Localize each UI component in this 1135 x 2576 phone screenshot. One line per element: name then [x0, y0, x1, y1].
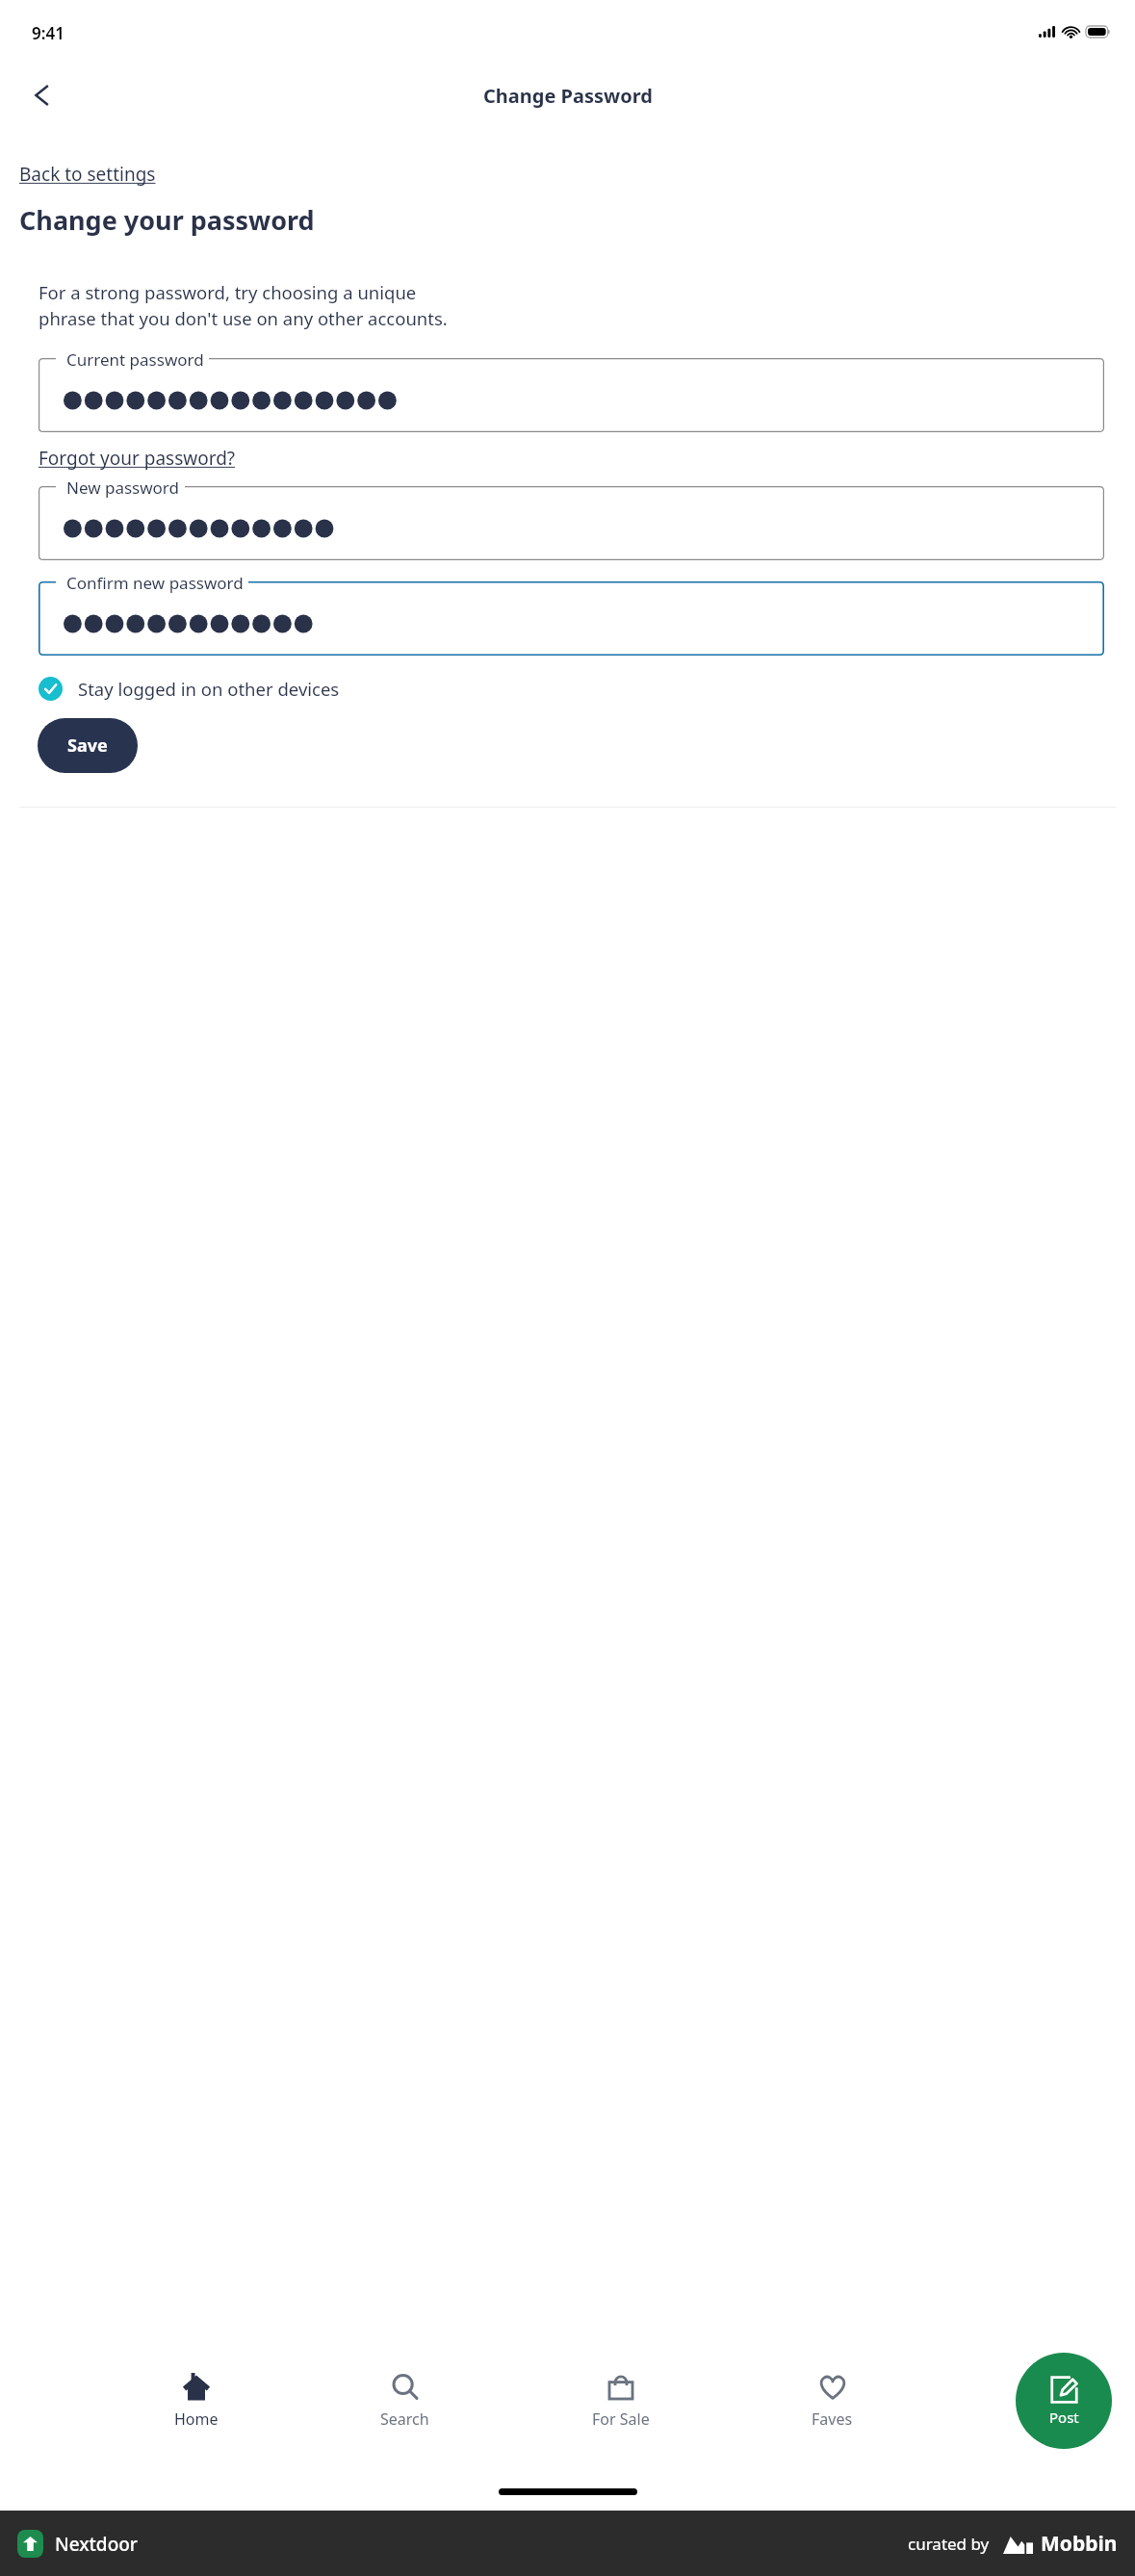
staticText: Confirm new password [66, 572, 244, 594]
staticText: For Sale [592, 2409, 650, 2430]
button[interactable]: Stay logged in on other devices [39, 677, 340, 701]
button[interactable]: Confirm new password [39, 581, 1104, 656]
staticText: Mobbin [1041, 2530, 1118, 2558]
staticText: Back to settings [19, 162, 156, 187]
button[interactable]: Faves [800, 2367, 864, 2435]
button[interactable]: Save [38, 718, 138, 773]
button[interactable]: New password [39, 486, 1104, 560]
staticText: Change Password [483, 83, 653, 109]
staticText: 9:41 [32, 22, 64, 44]
staticText: For a strong password, try choosing a un… [39, 280, 448, 331]
staticText: Save [67, 734, 108, 758]
staticText: Home [174, 2409, 219, 2430]
button[interactable]: Search [369, 2367, 441, 2435]
staticText: Current password [66, 348, 204, 371]
staticText: Search [380, 2409, 429, 2430]
staticText: Stay logged in on other devices [78, 677, 340, 701]
button[interactable]: Back [15, 68, 69, 122]
staticText: Forgot your password? [39, 446, 236, 471]
button[interactable]: For Sale [580, 2367, 661, 2435]
button[interactable]: Post [1016, 2353, 1112, 2449]
button[interactable]: Home [163, 2367, 230, 2435]
staticText: curated by [908, 2533, 990, 2555]
staticText: Post [1049, 2408, 1079, 2427]
staticText: Change your password [19, 202, 315, 238]
staticText: New password [66, 477, 180, 499]
staticText: Faves [812, 2409, 853, 2430]
button[interactable]: Forgot your password? [39, 446, 236, 471]
button[interactable]: Current password [39, 358, 1104, 432]
staticText: Nextdoor [55, 2532, 138, 2557]
button[interactable]: Back to settings [19, 158, 156, 191]
